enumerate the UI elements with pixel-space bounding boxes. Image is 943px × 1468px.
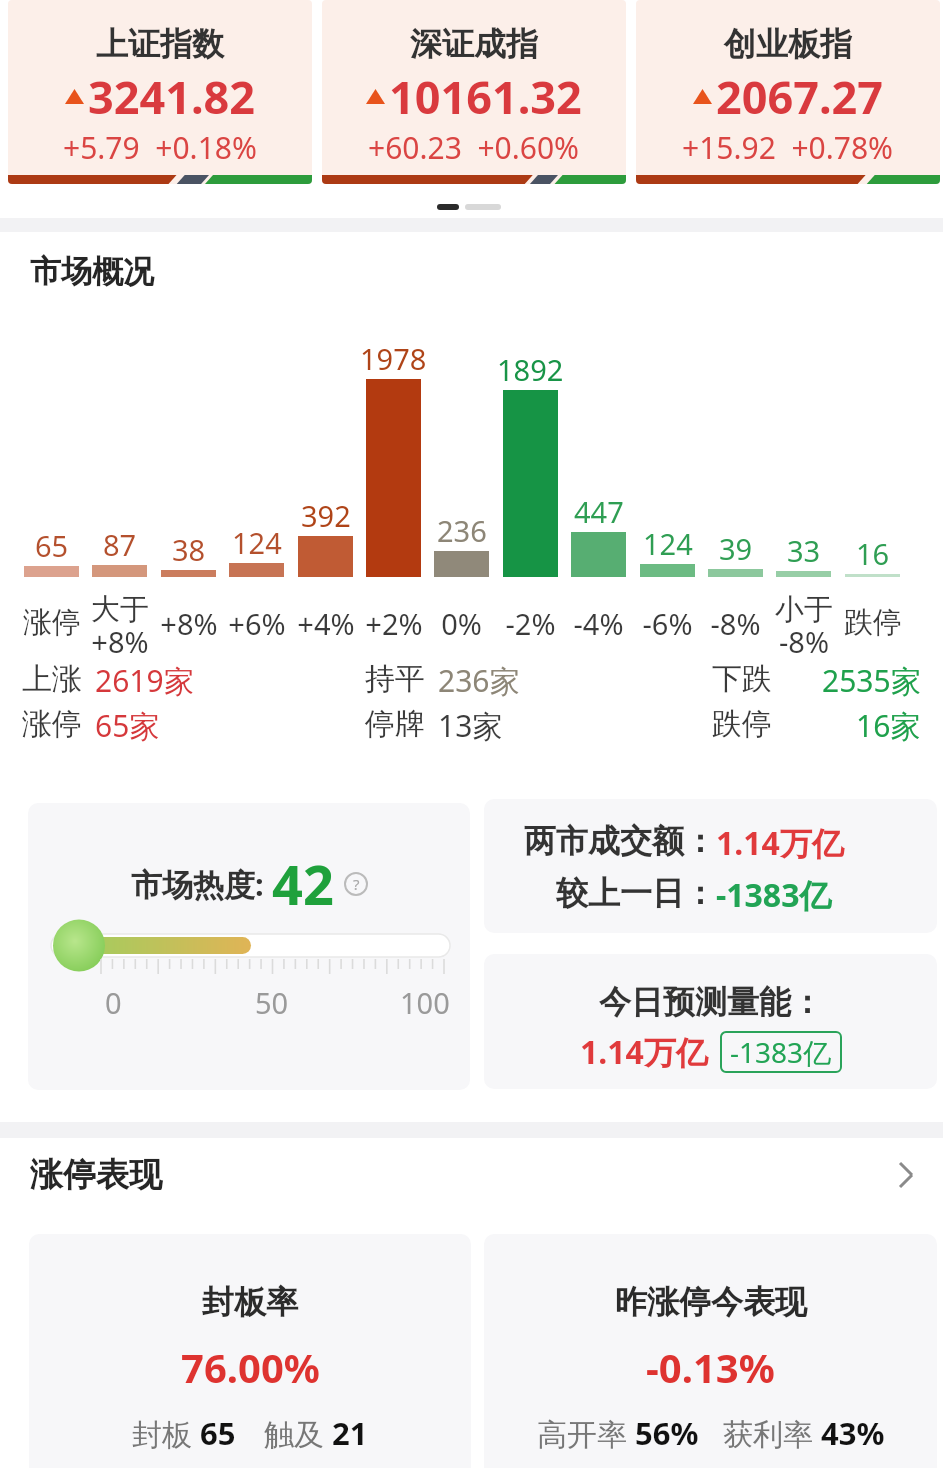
staticText: 16家 — [856, 705, 921, 746]
staticText: -1383亿 — [716, 873, 832, 917]
staticText: 高开率 — [537, 1413, 635, 1454]
staticText: 下跌 — [712, 660, 772, 698]
staticText: 56% — [635, 1412, 699, 1454]
staticText: 1.14万亿 — [580, 1030, 708, 1074]
staticText: 65家 — [95, 705, 160, 746]
staticText: -4% — [573, 604, 624, 643]
button[interactable]: 涨停表现 — [0, 1150, 943, 1200]
staticText: 38 — [172, 530, 206, 569]
staticText: 今日预测量能： — [599, 982, 823, 1022]
staticText: 50 — [255, 983, 289, 1022]
staticText: 42 — [272, 847, 334, 921]
staticText: 1.14万亿 — [716, 821, 844, 865]
staticText: -0.13% — [646, 1340, 775, 1394]
staticText: 10161.32 — [389, 66, 582, 127]
staticText: 大于 +8% — [91, 591, 149, 661]
staticText: 获利率 — [723, 1413, 821, 1454]
staticText: 涨停 — [22, 705, 82, 743]
staticText: 停牌 — [365, 705, 425, 743]
staticText: 上涨 — [22, 660, 82, 698]
staticText: 2067.27 — [716, 66, 884, 127]
staticText: 涨停 — [23, 604, 81, 641]
staticText: 深证成指 — [410, 24, 538, 64]
button[interactable]: 市场热度: — [28, 803, 470, 1090]
staticText: -2% — [505, 604, 556, 643]
staticText: ? — [353, 874, 360, 894]
staticText: -6% — [642, 604, 693, 643]
staticText: 1892 — [497, 350, 564, 389]
staticText: 0% — [441, 604, 482, 643]
staticText: 持平 — [365, 660, 425, 698]
staticText: 小于 -8% — [775, 591, 833, 661]
staticText: 76.00% — [181, 1340, 320, 1394]
staticText: 39 — [719, 529, 753, 568]
staticText: 上证指数 — [96, 24, 224, 64]
staticText: 较上一日： — [556, 873, 716, 913]
staticText: 跌停 — [712, 705, 772, 743]
staticText: 21 — [332, 1412, 368, 1454]
staticText: +60.23 +0.60% — [368, 127, 580, 168]
staticText: 447 — [574, 492, 624, 531]
button[interactable]: 今日预测量能： — [484, 954, 937, 1089]
staticText: 创业板指 — [724, 24, 852, 64]
staticText: 两市成交额： — [524, 821, 716, 861]
staticText: 1978 — [360, 339, 427, 378]
staticText: 236家 — [438, 660, 520, 701]
staticText: +4% — [297, 604, 355, 643]
staticText: 市场热度: — [131, 863, 272, 905]
button[interactable]: 昨涨停今表现 — [484, 1234, 937, 1468]
button[interactable]: 深证成指 — [322, 0, 626, 184]
staticText: 2619家 — [95, 660, 194, 701]
staticText: 跌停 — [844, 604, 902, 641]
button[interactable]: 上证指数 — [8, 0, 312, 184]
staticText: 封板 — [132, 1413, 200, 1454]
staticText: 涨停表现 — [30, 1154, 162, 1196]
staticText: 236 — [437, 511, 487, 550]
staticText: 13家 — [438, 705, 503, 746]
staticText: 2535家 — [822, 660, 921, 701]
staticText: 392 — [301, 496, 351, 535]
button[interactable]: 封板率 — [29, 1234, 471, 1468]
staticText: 100 — [400, 983, 450, 1022]
staticText: 65 — [200, 1412, 236, 1454]
staticText: 124 — [232, 523, 282, 562]
button[interactable]: 创业板指 — [636, 0, 940, 184]
staticText: +2% — [365, 604, 423, 643]
staticText: +6% — [228, 604, 286, 643]
staticText: +8% — [160, 604, 218, 643]
staticText: 市场概况 — [30, 252, 154, 291]
staticText: -1383亿 — [730, 1033, 832, 1071]
staticText: 昨涨停今表现 — [615, 1282, 807, 1322]
staticText: 0 — [105, 983, 122, 1022]
staticText: 3241.82 — [88, 66, 256, 127]
button[interactable]: 两市成交额： — [484, 799, 937, 933]
staticText: 封板率 — [202, 1282, 298, 1322]
staticText: 87 — [103, 525, 137, 564]
staticText: -8% — [710, 604, 761, 643]
staticText: 124 — [643, 524, 693, 563]
staticText: 43% — [821, 1412, 885, 1454]
staticText: 65 — [35, 526, 69, 565]
staticText: 16 — [856, 534, 890, 573]
staticText: 33 — [787, 531, 821, 570]
staticText: +15.92 +0.78% — [682, 127, 894, 168]
staticText: 触及 — [264, 1413, 332, 1454]
staticText: +5.79 +0.18% — [63, 127, 257, 168]
